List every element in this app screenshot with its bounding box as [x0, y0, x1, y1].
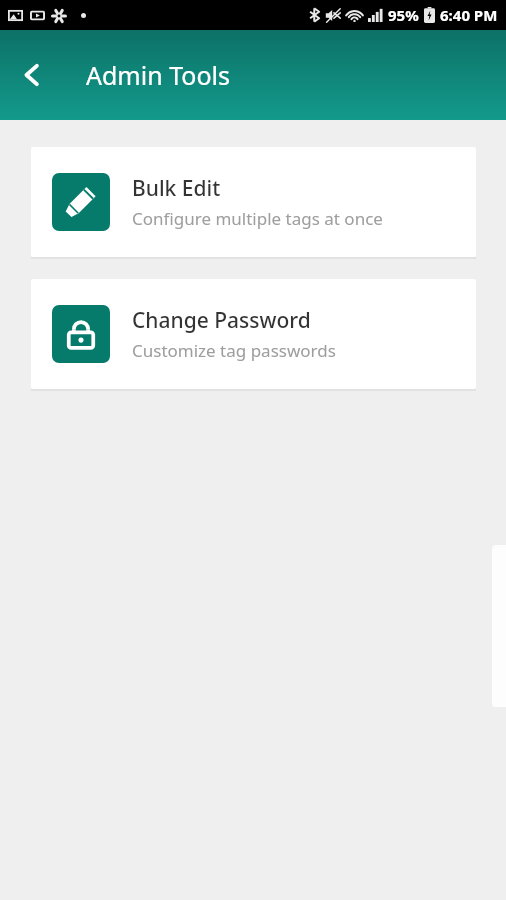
staticText: 95%	[388, 5, 419, 25]
button[interactable]: Bulk Edit	[31, 147, 476, 257]
staticText: Configure multiple tags at once	[132, 207, 383, 230]
staticText: 6:40 PM	[440, 5, 498, 25]
staticText: Change Password	[132, 306, 311, 335]
staticText: Customize tag passwords	[132, 339, 336, 362]
staticText: Bulk Edit	[132, 174, 221, 203]
button[interactable]: Back	[6, 49, 58, 101]
button[interactable]: Change Password	[31, 279, 476, 389]
staticText: Admin Tools	[86, 58, 230, 92]
